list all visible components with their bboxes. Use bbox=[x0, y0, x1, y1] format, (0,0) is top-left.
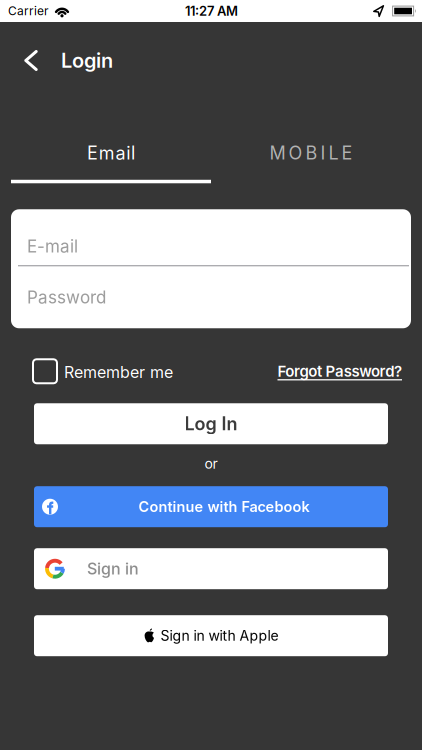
button[interactable]: Sign in bbox=[34, 548, 388, 589]
staticText: Login bbox=[61, 48, 113, 73]
staticText: Sign in bbox=[87, 559, 139, 578]
staticText: Remember me bbox=[64, 363, 173, 382]
button[interactable]: MOBILE bbox=[211, 142, 411, 164]
button[interactable]: Log In bbox=[34, 403, 388, 444]
staticText: Email bbox=[87, 142, 135, 164]
staticText: or bbox=[204, 455, 217, 472]
button[interactable]: Sign in with Apple bbox=[34, 615, 388, 656]
staticText: E-mail bbox=[27, 236, 78, 257]
button[interactable]: Email bbox=[11, 142, 211, 164]
staticText: Continue with Facebook bbox=[138, 498, 309, 515]
staticText: Log In bbox=[184, 413, 237, 435]
button[interactable]: Continue with Facebook bbox=[34, 486, 388, 527]
button[interactable]: Remember me bbox=[32, 358, 173, 384]
staticText: MOBILE bbox=[269, 142, 352, 164]
staticText: Carrier bbox=[8, 4, 49, 18]
staticText: Sign in with Apple bbox=[160, 627, 278, 644]
staticText: 11:27 AM bbox=[185, 3, 238, 19]
button[interactable]: Forgot Password? bbox=[277, 362, 402, 380]
button[interactable]: Back bbox=[16, 40, 46, 81]
staticText: Password bbox=[27, 287, 106, 308]
staticText: Forgot Password? bbox=[277, 362, 402, 380]
